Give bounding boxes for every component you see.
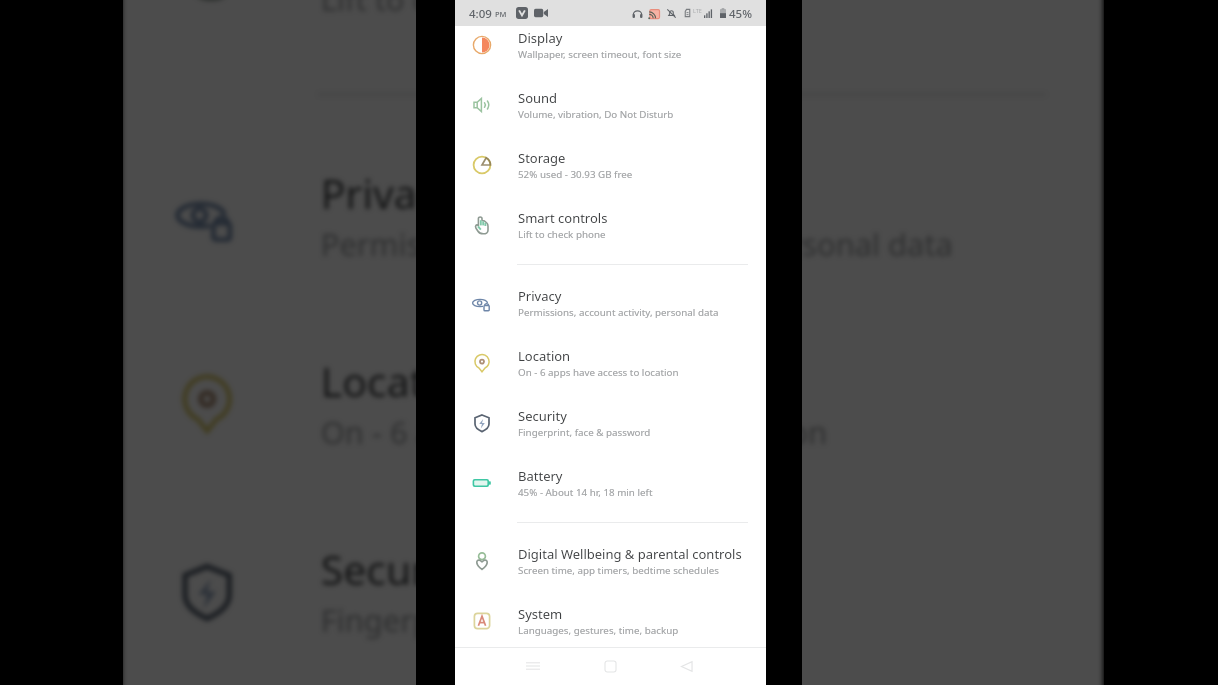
staticText: Location (321, 353, 488, 410)
staticText: 45% (729, 6, 752, 22)
staticText: Digital Wellbeing & parental controls (518, 545, 742, 563)
button[interactable]: Battery (455, 453, 766, 513)
staticText: Wallpaper, screen timeout, font size (518, 48, 682, 61)
staticText: Lift to check phone (518, 228, 606, 241)
staticText: Storage (518, 149, 566, 167)
button[interactable]: Location (455, 333, 766, 393)
button[interactable]: Home (592, 656, 628, 676)
button[interactable]: Location (123, 309, 1103, 497)
button[interactable]: Security (123, 497, 1103, 685)
staticText: Location (518, 347, 571, 365)
staticText: PM (495, 9, 507, 19)
staticText: System (518, 605, 563, 623)
button[interactable]: Smart controls (123, 0, 1103, 65)
button[interactable]: Security (455, 393, 766, 453)
staticText: Display (518, 29, 563, 47)
button[interactable]: Recent apps (515, 656, 551, 676)
staticText: Privacy (518, 287, 562, 305)
staticText: 4:09 (469, 6, 492, 22)
button[interactable]: Privacy (123, 121, 1103, 309)
button[interactable]: System (455, 591, 766, 651)
button[interactable]: Sound (455, 75, 766, 135)
staticText: Privacy (321, 165, 459, 221)
staticText: Security (321, 541, 475, 598)
staticText: Sound (518, 89, 558, 107)
button[interactable]: Smart controls (455, 195, 766, 255)
staticText: Volume, vibration, Do Not Disturb (518, 108, 674, 121)
staticText: Permissions, account activity, personal … (518, 306, 719, 319)
button[interactable]: Display (455, 15, 766, 75)
staticText: Smart controls (518, 209, 608, 227)
staticText: LTE (693, 7, 702, 14)
staticText: 45% - About 14 hr, 18 min left (518, 486, 653, 499)
staticText: Lift to check phone (321, 0, 598, 21)
staticText: Fingerprint, face & password (518, 426, 651, 439)
staticText: On - 6 apps have access to location (518, 366, 679, 379)
staticText: Permissions, account activity, personal … (321, 225, 955, 265)
staticText: Screen time, app timers, bedtime schedul… (518, 564, 719, 577)
staticText: On - 6 apps have access to location (321, 413, 828, 454)
staticText: Fingerprint, face & password (321, 601, 740, 642)
button[interactable]: Back (669, 656, 705, 676)
staticText: Battery (518, 467, 563, 485)
staticText: Security (518, 407, 567, 425)
button[interactable]: Digital Wellbeing & parental controls (455, 531, 766, 591)
button[interactable]: Privacy (455, 273, 766, 333)
staticText: 52% used - 30.93 GB free (518, 168, 633, 181)
staticText: Languages, gestures, time, backup (518, 624, 679, 637)
button[interactable]: Storage (455, 135, 766, 195)
